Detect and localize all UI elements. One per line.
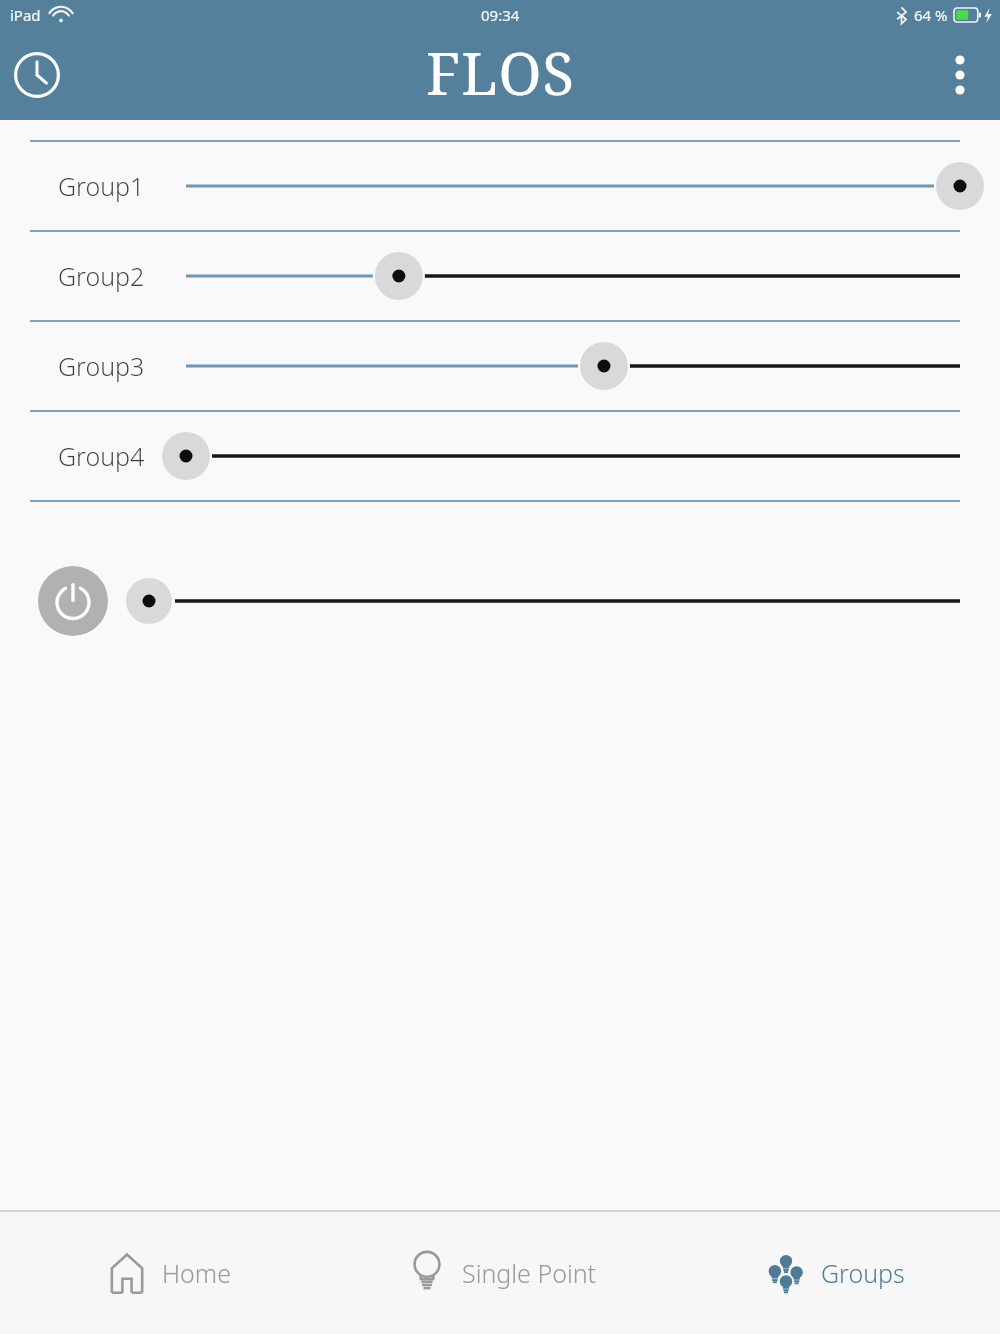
staticText: Single Point: [462, 1256, 597, 1290]
staticText: iPad: [10, 5, 41, 25]
staticText: Group2: [58, 259, 145, 293]
button[interactable]: Home: [0, 1212, 334, 1334]
button[interactable]: Power: [38, 566, 108, 636]
button[interactable]: Group4: [0, 412, 1000, 500]
staticText: 64 %: [914, 5, 948, 25]
staticText: Groups: [821, 1256, 905, 1290]
staticText: Group4: [58, 439, 145, 473]
staticText: FLOS: [426, 33, 575, 112]
button[interactable]: [0, 555, 1000, 647]
button[interactable]: Single Point: [334, 1212, 667, 1334]
staticText: Group1: [58, 169, 145, 203]
button[interactable]: Group3: [0, 322, 1000, 410]
staticText: 09:34: [481, 5, 520, 25]
button[interactable]: More options: [938, 45, 982, 105]
staticText: Home: [162, 1256, 231, 1290]
button[interactable]: Timer: [10, 48, 64, 102]
button[interactable]: Group1: [0, 142, 1000, 230]
staticText: Group3: [58, 349, 145, 383]
button[interactable]: Groups: [667, 1212, 1000, 1334]
button[interactable]: Group2: [0, 232, 1000, 320]
